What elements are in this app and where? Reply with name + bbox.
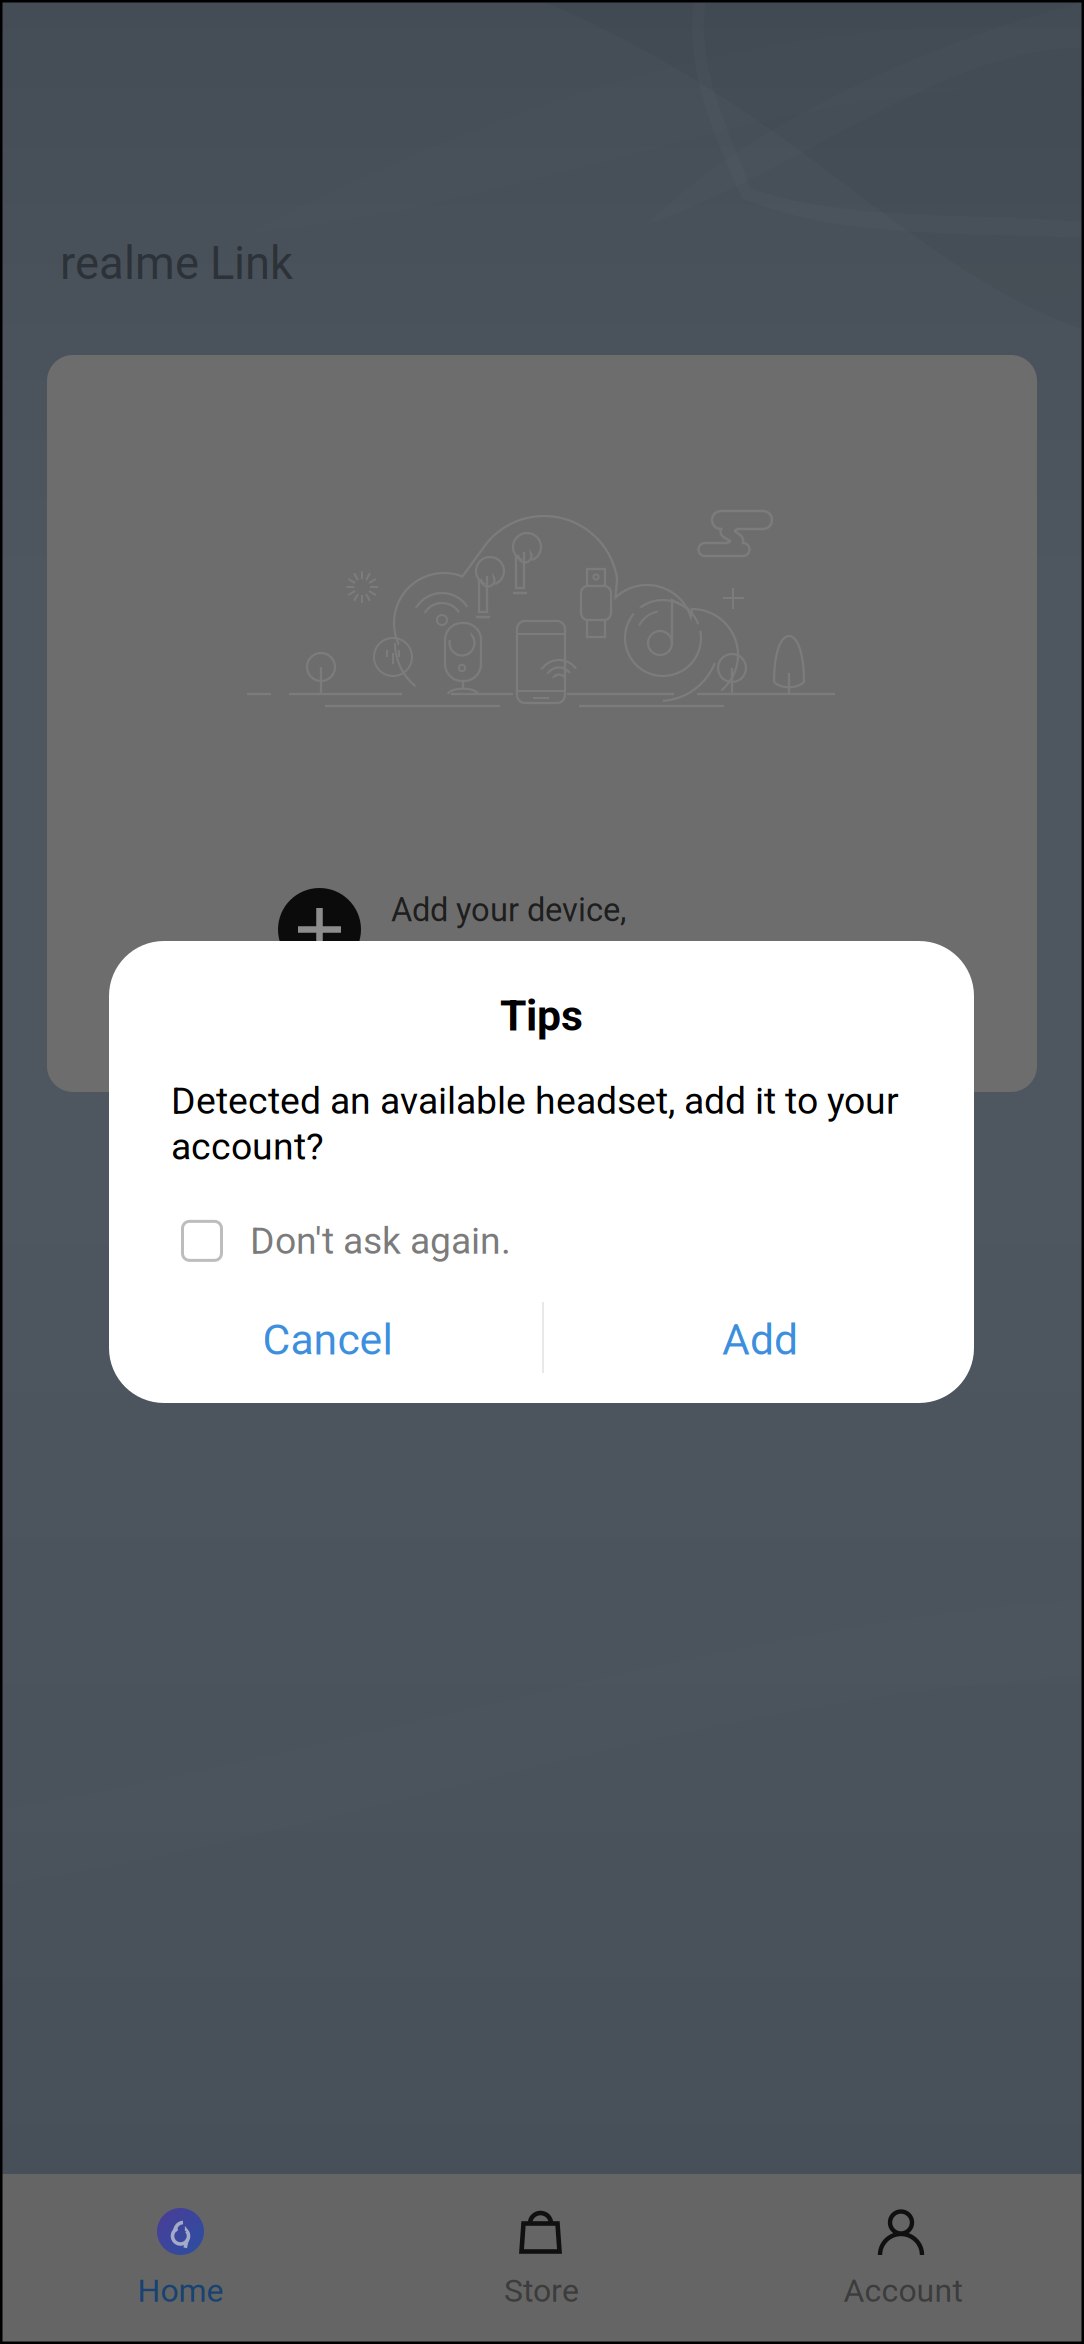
staticText: Detected an available headset, add it to… — [171, 1079, 899, 1168]
staticText: Cancel — [262, 1315, 392, 1365]
button[interactable]: Add — [544, 1296, 976, 1384]
staticText: Account — [843, 2272, 962, 2309]
staticText: Home — [137, 2272, 223, 2309]
staticText: Store — [504, 2272, 579, 2309]
staticText: Add — [722, 1315, 798, 1365]
button[interactable]: Home — [0, 2174, 361, 2344]
staticText: Don't ask again. — [250, 1219, 511, 1263]
button[interactable]: Account — [722, 2174, 1084, 2344]
button[interactable]: Don't ask again. — [181, 1219, 511, 1263]
button[interactable]: Store — [361, 2174, 722, 2344]
button[interactable]: Cancel — [111, 1296, 544, 1384]
staticText: Tips — [500, 991, 583, 1041]
staticText: Add your device, — [391, 891, 626, 929]
staticText: realme Link — [60, 237, 293, 290]
